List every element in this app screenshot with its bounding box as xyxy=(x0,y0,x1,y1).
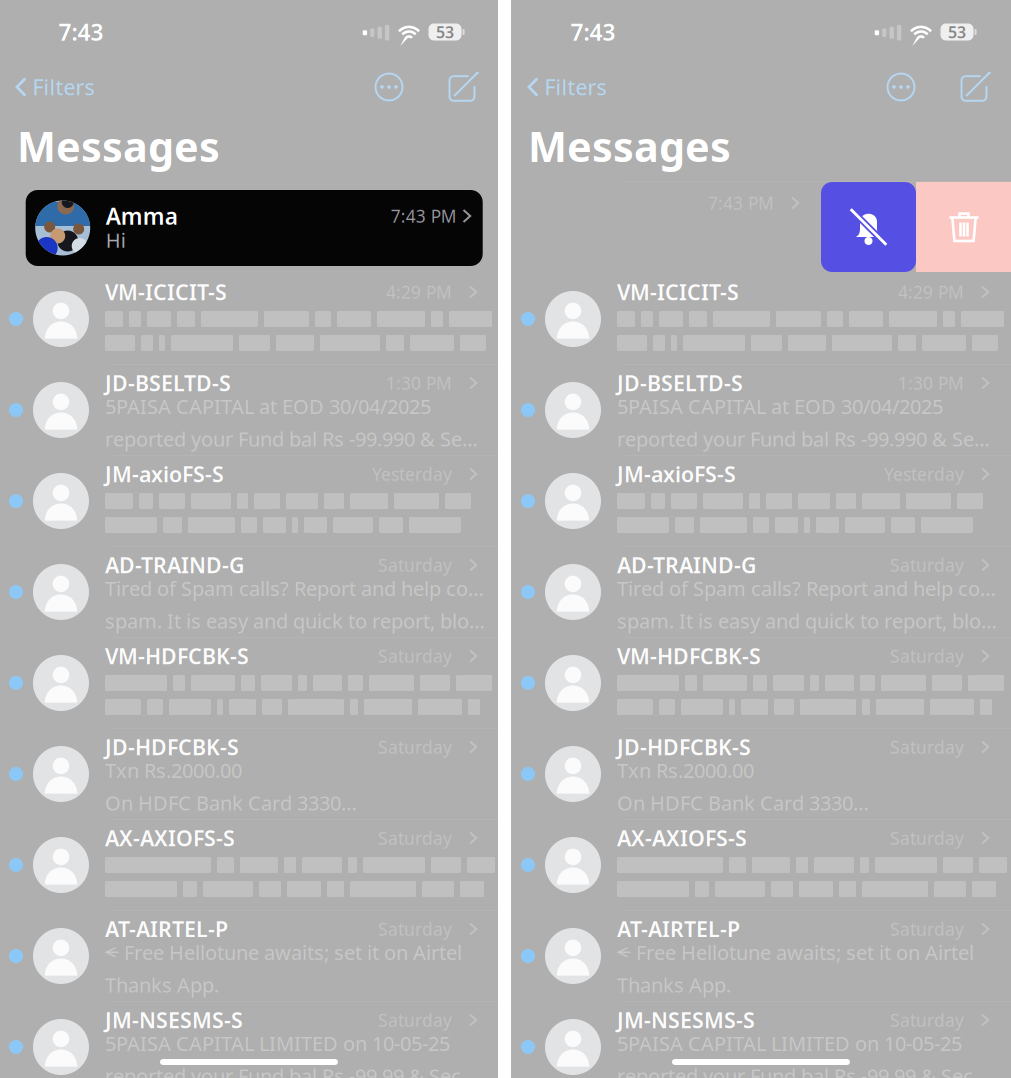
staticText: AD-TRAIND-G xyxy=(617,551,756,579)
button[interactable]: AT-AIRTEL-P xyxy=(512,0,1010,1078)
button[interactable]: Filters xyxy=(521,66,612,108)
button[interactable]: Filters xyxy=(9,66,100,108)
staticText: Thanks App. xyxy=(617,972,731,998)
staticText: Free Hellotune awaits; set it on Airtel xyxy=(636,939,974,966)
staticText: Txn Rs.2000.00 xyxy=(105,757,242,784)
staticText: reported your Fund bal Rs -99.990 & Secu… xyxy=(617,426,997,452)
button[interactable]: More options xyxy=(880,66,922,108)
button[interactable]: JD-HDFCBK-S xyxy=(0,0,498,1078)
staticText: Messages xyxy=(528,119,731,173)
button[interactable]: JM-axioFS-S xyxy=(512,0,1010,1078)
staticText: 4:29 PM xyxy=(386,280,452,303)
staticText: AX-AXIOFS-S xyxy=(617,824,747,852)
staticText: Saturday xyxy=(378,826,452,849)
staticText: JM-NSESMS-S xyxy=(105,1006,243,1034)
button[interactable]: VM-ICICIT-S xyxy=(512,0,1010,1078)
staticText: JD-HDFCBK-S xyxy=(617,733,751,761)
button[interactable]: VM-HDFCBK-S xyxy=(0,0,498,1078)
staticText: Filters xyxy=(544,73,606,101)
button[interactable]: Delete xyxy=(916,182,1011,272)
staticText: VM-ICICIT-S xyxy=(617,278,739,306)
staticText: JM-NSESMS-S xyxy=(617,1006,755,1034)
staticText: Saturday xyxy=(890,735,964,758)
staticText: JD-BSELTD-S xyxy=(617,369,743,397)
staticText: reported your Fund bal Rs -99.990 & Secu… xyxy=(105,426,485,452)
staticText: VM-ICICIT-S xyxy=(105,278,227,306)
staticText: 7:43 xyxy=(58,17,103,47)
staticText: Saturday xyxy=(890,644,964,667)
staticText: Saturday xyxy=(378,644,452,667)
staticText: 7:43 xyxy=(570,17,615,47)
staticText: spam. It is easy and quick to report, bl… xyxy=(105,608,485,634)
staticText: 4:29 PM xyxy=(898,280,964,303)
staticText: Yesterday xyxy=(372,462,452,485)
staticText: Saturday xyxy=(378,917,452,940)
staticText: 5PAISA CAPITAL at EOD 30/04/2025 xyxy=(617,393,943,420)
button[interactable]: Compose xyxy=(953,66,995,108)
staticText: Tired of Spam calls? Report and help con… xyxy=(617,575,997,602)
staticText: 53 xyxy=(436,21,454,43)
button[interactable]: JM-NSESMS-S xyxy=(512,0,1010,1078)
staticText: JD-BSELTD-S xyxy=(105,369,231,397)
button[interactable]: JM-NSESMS-S xyxy=(0,0,498,1078)
staticText: JM-axioFS-S xyxy=(105,460,224,488)
button[interactable]: JD-HDFCBK-S xyxy=(512,0,1010,1078)
staticText: Thanks App. xyxy=(105,972,219,998)
staticText: 7:43 PM xyxy=(391,204,457,227)
staticText: Messages xyxy=(17,119,220,173)
button[interactable]: JD-BSELTD-S xyxy=(512,0,1010,1078)
staticText: 5PAISA CAPITAL LIMITED on 10-05-25 xyxy=(105,1030,450,1057)
staticText: Filters xyxy=(32,73,94,101)
staticText: Saturday xyxy=(890,917,964,940)
staticText: Saturday xyxy=(378,735,452,758)
button[interactable]: AX-AXIOFS-S xyxy=(512,0,1010,1078)
staticText: Saturday xyxy=(378,1008,452,1031)
staticText: Saturday xyxy=(890,553,964,576)
staticText: Saturday xyxy=(890,826,964,849)
staticText: Free Hellotune awaits; set it on Airtel xyxy=(124,939,462,966)
staticText: VM-HDFCBK-S xyxy=(617,642,761,670)
staticText: On HDFC Bank Card 3330… xyxy=(617,790,869,816)
button[interactable]: Mute xyxy=(821,182,916,272)
staticText: VM-HDFCBK-S xyxy=(105,642,249,670)
button[interactable]: More options xyxy=(368,66,410,108)
staticText: Txn Rs.2000.00 xyxy=(617,757,754,784)
staticText: On HDFC Bank Card 3330… xyxy=(105,790,357,816)
staticText: Tired of Spam calls? Report and help con… xyxy=(105,575,485,602)
button[interactable]: Amma xyxy=(26,190,483,266)
button[interactable]: JD-BSELTD-S xyxy=(0,0,498,1078)
staticText: reported your Fund bal Rs -99.99 & Secur… xyxy=(105,1063,485,1078)
staticText: JD-HDFCBK-S xyxy=(105,733,239,761)
staticText: 53 xyxy=(948,21,966,43)
staticText: 5PAISA CAPITAL at EOD 30/04/2025 xyxy=(105,393,431,420)
button[interactable]: VM-HDFCBK-S xyxy=(512,0,1010,1078)
staticText: 1:30 PM xyxy=(386,371,452,394)
staticText: AT-AIRTEL-P xyxy=(617,915,740,943)
staticText: AX-AXIOFS-S xyxy=(105,824,235,852)
button[interactable]: AD-TRAIND-G xyxy=(0,0,498,1078)
staticText: Amma xyxy=(106,201,178,231)
staticText: AD-TRAIND-G xyxy=(105,551,244,579)
button[interactable]: AD-TRAIND-G xyxy=(512,0,1010,1078)
button[interactable]: VM-ICICIT-S xyxy=(0,0,498,1078)
staticText: Yesterday xyxy=(884,462,964,485)
staticText: JM-axioFS-S xyxy=(617,460,736,488)
staticText: 5PAISA CAPITAL LIMITED on 10-05-25 xyxy=(617,1030,962,1057)
staticText: reported your Fund bal Rs -99.99 & Secur… xyxy=(617,1063,997,1078)
button[interactable]: Compose xyxy=(441,66,483,108)
button[interactable]: JM-axioFS-S xyxy=(0,0,498,1078)
staticText: Saturday xyxy=(378,553,452,576)
button[interactable]: AX-AXIOFS-S xyxy=(0,0,498,1078)
staticText: Saturday xyxy=(890,1008,964,1031)
staticText: AT-AIRTEL-P xyxy=(105,915,228,943)
button[interactable]: AT-AIRTEL-P xyxy=(0,0,498,1078)
staticText: Hi xyxy=(106,227,126,253)
staticText: spam. It is easy and quick to report, bl… xyxy=(617,608,997,634)
staticText: 1:30 PM xyxy=(898,371,964,394)
staticText: 7:43 PM xyxy=(708,191,774,214)
